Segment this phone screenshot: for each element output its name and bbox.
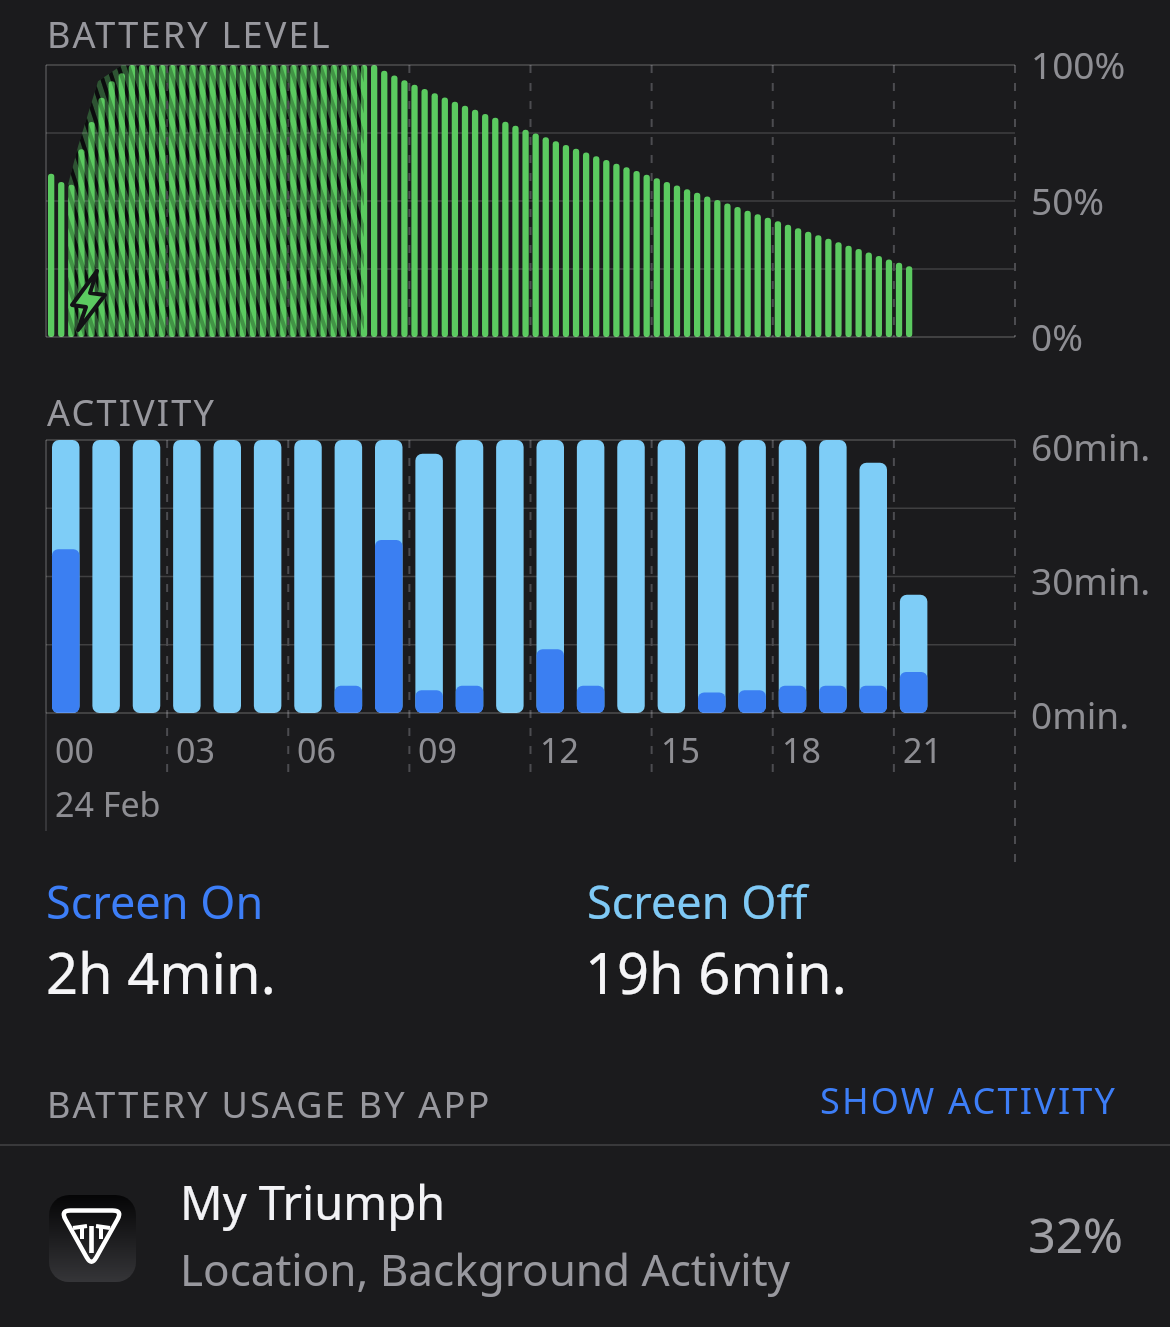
staticText: ACTIVITY	[47, 388, 217, 437]
staticText: 60min.	[1031, 421, 1151, 471]
staticText: 50%	[1031, 175, 1105, 225]
staticText: 100%	[1031, 39, 1126, 89]
button[interactable]: SHOW ACTIVITY	[820, 1076, 1118, 1125]
staticText: 18	[782, 727, 821, 773]
staticText: 24 Feb	[55, 781, 161, 827]
staticText: My Triumph	[180, 1170, 446, 1234]
staticText: 0min.	[1031, 689, 1130, 739]
staticText: 19h 6min.	[585, 934, 847, 1010]
staticText: 12	[540, 727, 579, 773]
staticText: Screen Off	[587, 871, 808, 932]
staticText: BATTERY USAGE BY APP	[47, 1080, 492, 1129]
staticText: BATTERY LEVEL	[47, 10, 332, 59]
staticText: 30min.	[1031, 555, 1151, 605]
staticText: 00	[55, 727, 94, 773]
button[interactable]: My Triumph	[0, 1146, 1170, 1327]
staticText: 32%	[1028, 1202, 1123, 1267]
staticText: 21	[903, 727, 942, 773]
staticText: SHOW ACTIVITY	[820, 1076, 1118, 1125]
staticText: 0%	[1031, 311, 1083, 361]
staticText: 15	[661, 727, 700, 773]
staticText: 03	[176, 727, 215, 773]
staticText: Screen On	[46, 871, 264, 932]
staticText: 2h 4min.	[46, 934, 276, 1010]
staticText: 06	[297, 727, 336, 773]
staticText: Location, Background Activity	[180, 1239, 791, 1299]
staticText: 09	[418, 727, 457, 773]
